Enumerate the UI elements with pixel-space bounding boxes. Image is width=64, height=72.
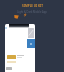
staticText: SIMPLE UI KIT	[22, 4, 43, 8]
button[interactable]: Flame	[14, 14, 19, 19]
button[interactable]: Blue card	[27, 39, 35, 48]
button[interactable]: Bolt	[23, 13, 27, 17]
button[interactable]: Preview	[28, 28, 34, 38]
staticText: Light & Dark Mobile App	[17, 10, 47, 14]
